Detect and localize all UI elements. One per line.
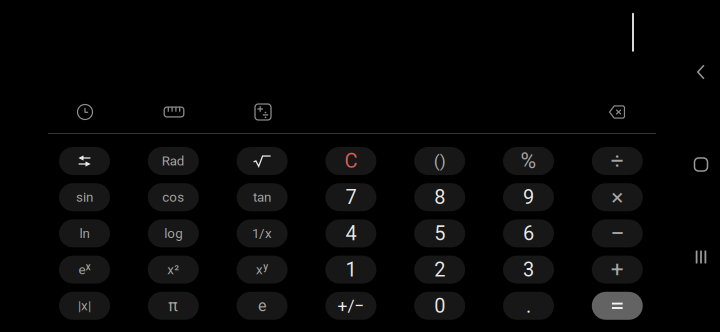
staticText: 4 — [345, 222, 356, 245]
button[interactable]: Rad — [148, 147, 199, 175]
button[interactable]: Home — [694, 158, 707, 171]
button[interactable]: eˣ — [59, 256, 110, 284]
button[interactable]: 7 — [325, 183, 376, 211]
staticText: ln — [79, 226, 89, 241]
staticText: 6 — [523, 222, 534, 245]
staticText: tan — [253, 189, 271, 205]
button[interactable]: − — [592, 219, 643, 247]
button[interactable]: x² — [148, 256, 199, 284]
button[interactable]: ln — [59, 219, 110, 247]
button[interactable] — [592, 292, 643, 320]
button[interactable]: 9 — [503, 183, 554, 211]
staticText: 3 — [523, 258, 534, 281]
staticText: . — [526, 294, 531, 317]
staticText: xʸ — [256, 262, 268, 277]
staticText: 8 — [434, 185, 445, 209]
staticText: π — [168, 296, 178, 315]
button[interactable]: + — [592, 256, 643, 284]
staticText: 1 — [345, 258, 356, 281]
button[interactable]: Recent apps — [694, 250, 708, 263]
button[interactable]: % — [503, 147, 554, 175]
staticText: − — [610, 219, 624, 248]
button[interactable]: tan — [237, 183, 288, 211]
button[interactable]: () — [414, 147, 465, 175]
staticText: |x| — [78, 298, 91, 314]
staticText: x² — [167, 262, 179, 277]
staticText: × — [611, 184, 623, 210]
button[interactable]: cos — [148, 183, 199, 211]
staticText: e — [258, 296, 266, 315]
staticText: 0 — [434, 294, 445, 317]
button[interactable]: π — [148, 292, 199, 320]
button[interactable]: 4 — [325, 219, 376, 247]
staticText: 1/x — [252, 226, 272, 241]
staticText: 2 — [434, 258, 445, 281]
staticText: C — [344, 149, 357, 173]
button[interactable]: sin — [59, 183, 110, 211]
button[interactable]: 1/x — [237, 219, 288, 247]
staticText: sin — [76, 189, 93, 205]
button[interactable]: 5 — [414, 219, 465, 247]
button[interactable]: 1 — [325, 256, 376, 284]
staticText: ÷ — [611, 148, 624, 174]
staticText: 7 — [345, 185, 356, 209]
staticText: 9 — [523, 185, 534, 209]
button[interactable]: 0 — [414, 292, 465, 320]
button[interactable]: +/− — [325, 292, 376, 320]
button[interactable]: C — [325, 147, 376, 175]
button[interactable]: xʸ — [237, 256, 288, 284]
button[interactable]: 3 — [503, 256, 554, 284]
button[interactable]: e — [237, 292, 288, 320]
button[interactable]: log — [148, 219, 199, 247]
button[interactable]: ÷ — [592, 147, 643, 175]
staticText: +/− — [337, 296, 364, 316]
staticText: cos — [162, 189, 184, 205]
staticText: eˣ — [78, 262, 90, 277]
button[interactable]: History — [76, 103, 93, 120]
button[interactable]: . — [503, 292, 554, 320]
staticText: () — [434, 151, 446, 171]
staticText: 5 — [434, 222, 445, 245]
button[interactable]: |x| — [59, 292, 110, 320]
staticText: % — [520, 148, 536, 173]
button[interactable]: Back — [696, 64, 705, 79]
button[interactable]: 8 — [414, 183, 465, 211]
button[interactable]: 6 — [503, 219, 554, 247]
staticText: log — [164, 226, 182, 241]
button[interactable]: Calculator mode — [254, 103, 272, 121]
button[interactable]: 2 — [414, 256, 465, 284]
button[interactable]: Backspace — [608, 104, 626, 120]
staticText: Rad — [162, 153, 185, 169]
button[interactable] — [237, 147, 288, 175]
button[interactable]: Unit converter — [163, 106, 185, 118]
button[interactable]: × — [592, 183, 643, 211]
button[interactable] — [59, 147, 110, 175]
staticText: + — [611, 256, 624, 283]
